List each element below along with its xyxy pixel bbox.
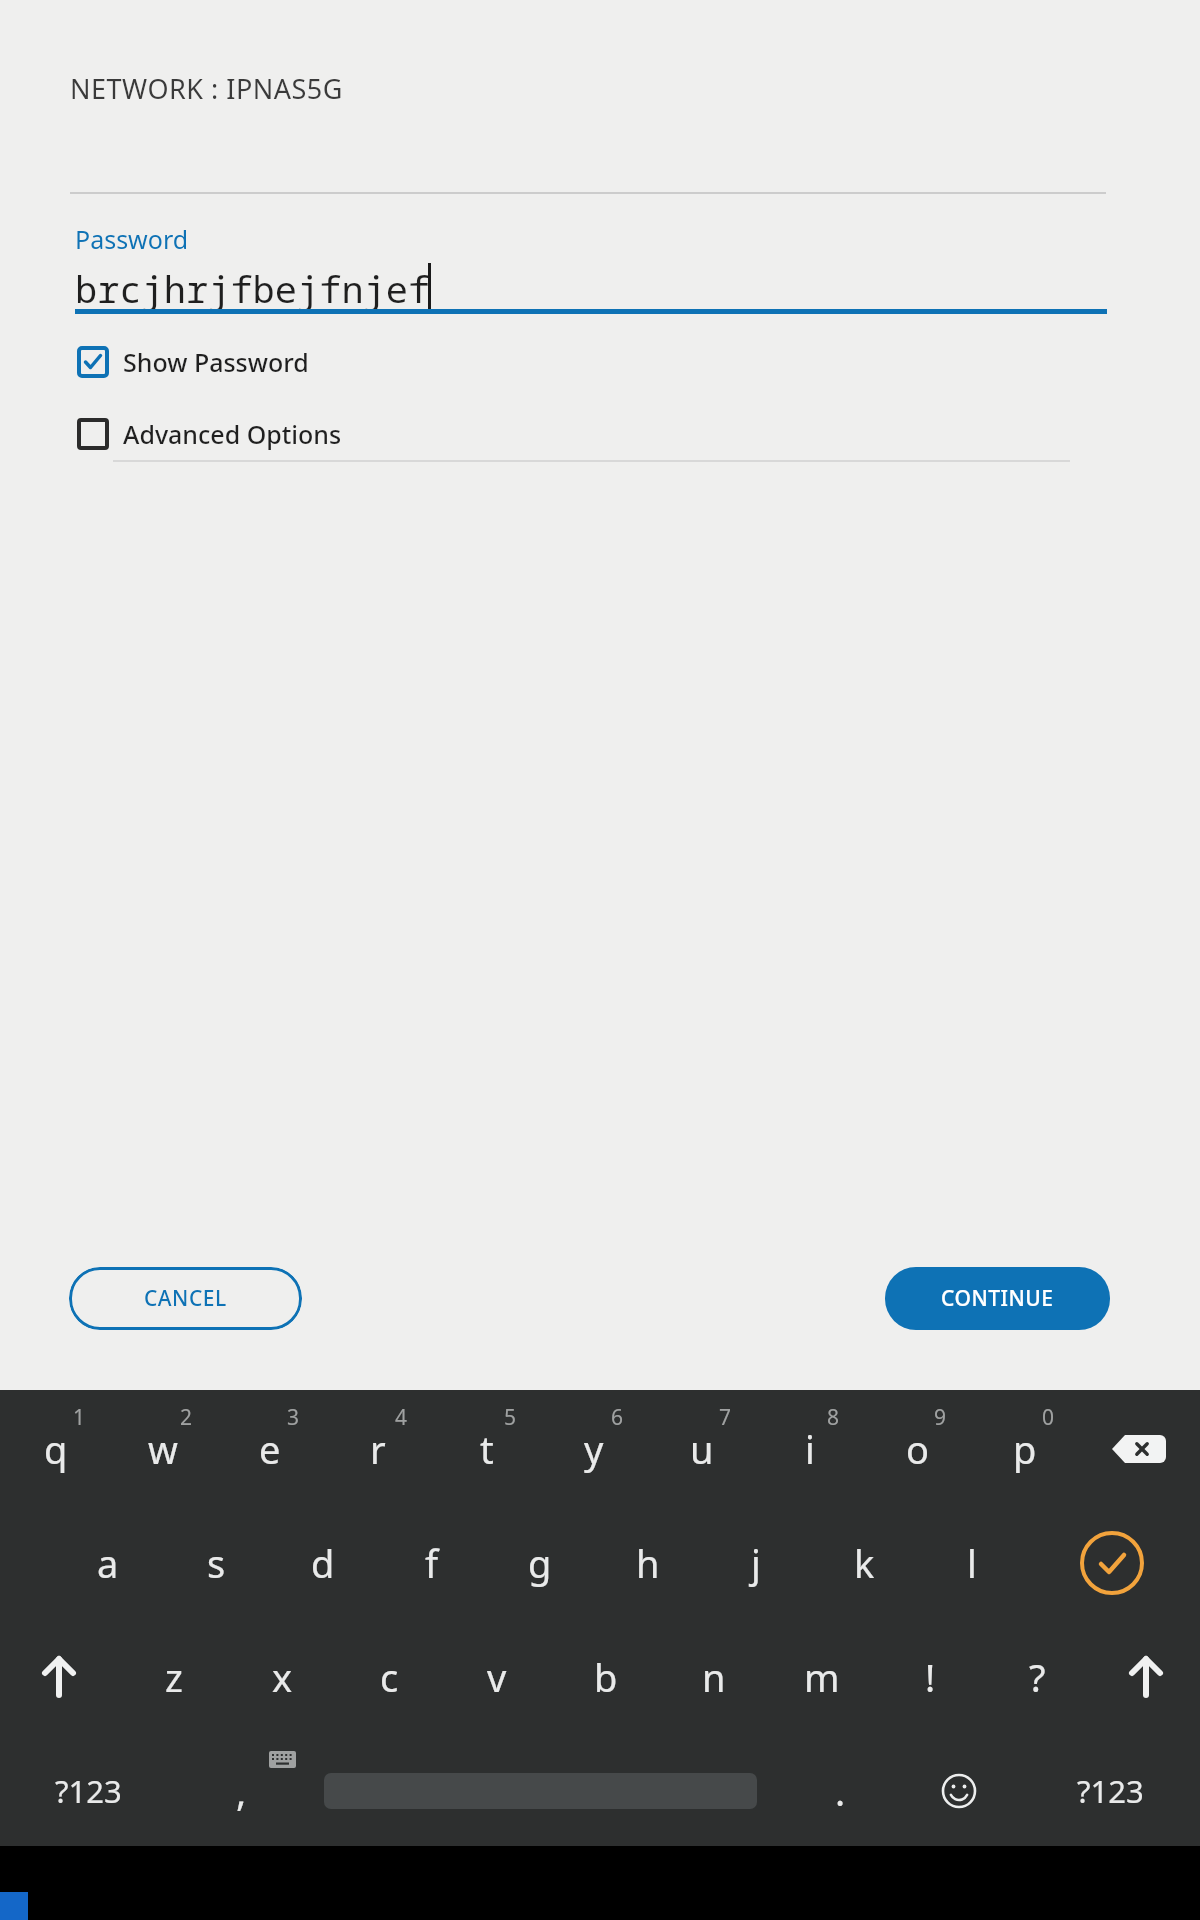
button[interactable]: e	[216, 1399, 324, 1499]
staticText: 9	[934, 1403, 947, 1431]
staticText: .	[835, 1765, 846, 1817]
staticText: c	[380, 1651, 399, 1703]
button[interactable]: CANCEL	[69, 1267, 302, 1330]
button[interactable]	[1062, 1513, 1162, 1613]
button[interactable]: a	[54, 1513, 162, 1613]
button[interactable]: g	[486, 1513, 594, 1613]
staticText: i	[805, 1423, 815, 1475]
button[interactable]: x	[228, 1627, 336, 1727]
button[interactable]: t	[433, 1399, 541, 1499]
button[interactable]: v	[443, 1627, 551, 1727]
staticText: r	[370, 1423, 386, 1475]
button[interactable]: Advanced Options	[77, 417, 342, 451]
staticText: k	[854, 1537, 875, 1589]
staticText: 7	[719, 1403, 732, 1431]
staticText: 2	[180, 1403, 193, 1431]
staticText: h	[636, 1537, 660, 1589]
button[interactable]: y	[540, 1399, 648, 1499]
staticText: !	[925, 1651, 936, 1703]
staticText: 4	[395, 1403, 408, 1431]
staticText: z	[165, 1651, 183, 1703]
staticText: b	[594, 1651, 618, 1703]
button[interactable]: d	[269, 1513, 377, 1613]
staticText: e	[259, 1423, 281, 1475]
staticText: u	[690, 1423, 714, 1475]
button[interactable]: u	[648, 1399, 756, 1499]
button[interactable]: c	[335, 1627, 443, 1727]
staticText: Show Password	[123, 345, 309, 379]
staticText: ?123	[1077, 1770, 1144, 1812]
staticText: 0	[1042, 1403, 1055, 1431]
button[interactable]: i	[756, 1399, 864, 1499]
button[interactable]: z	[120, 1627, 228, 1727]
button[interactable]: f	[378, 1513, 486, 1613]
staticText: o	[906, 1423, 929, 1475]
button[interactable]: s	[162, 1513, 270, 1613]
staticText: Password	[75, 222, 189, 256]
staticText: CANCEL	[144, 1284, 227, 1313]
staticText: ?	[1029, 1651, 1046, 1703]
staticText: Advanced Options	[123, 417, 342, 451]
button[interactable]	[909, 1741, 1009, 1841]
staticText: t	[480, 1423, 494, 1475]
button[interactable]: j	[702, 1513, 810, 1613]
staticText: v	[487, 1651, 507, 1703]
staticText: 6	[611, 1403, 624, 1431]
button[interactable]: .	[790, 1741, 890, 1841]
staticText: q	[44, 1423, 68, 1475]
staticText: ?123	[55, 1770, 122, 1812]
button[interactable]: CONTINUE	[885, 1267, 1110, 1330]
staticText: ,	[236, 1765, 247, 1817]
button[interactable]: ?123	[13, 1741, 163, 1841]
button[interactable]: o	[863, 1399, 971, 1499]
button[interactable]: !	[876, 1627, 984, 1727]
button[interactable]	[1096, 1627, 1196, 1727]
button[interactable]: n	[660, 1627, 768, 1727]
button[interactable]: r	[324, 1399, 432, 1499]
staticText: p	[1013, 1423, 1037, 1475]
staticText: j	[751, 1537, 761, 1589]
staticText: s	[207, 1537, 226, 1589]
button[interactable]: p	[971, 1399, 1079, 1499]
staticText: 3	[287, 1403, 300, 1431]
staticText: f	[425, 1537, 439, 1589]
button[interactable]: w	[109, 1399, 217, 1499]
staticText: m	[804, 1651, 840, 1703]
button[interactable]: b	[552, 1627, 660, 1727]
staticText: NETWORK : IPNAS5G	[70, 70, 343, 107]
staticText: n	[702, 1651, 726, 1703]
staticText: brcjhrjfbejfnjef	[75, 263, 431, 313]
button[interactable]: ?	[983, 1627, 1091, 1727]
button[interactable]: m	[768, 1627, 876, 1727]
staticText: w	[148, 1423, 178, 1475]
button[interactable]: ?123	[1035, 1741, 1185, 1841]
staticText: a	[97, 1537, 119, 1589]
button[interactable]: k	[810, 1513, 918, 1613]
staticText: 8	[827, 1403, 840, 1431]
button[interactable]: h	[594, 1513, 702, 1613]
button[interactable]	[1089, 1399, 1189, 1499]
staticText: 5	[504, 1403, 517, 1431]
button[interactable]: q	[2, 1399, 110, 1499]
staticText: y	[584, 1423, 604, 1475]
staticText: CONTINUE	[941, 1284, 1054, 1313]
button[interactable]: l	[918, 1513, 1026, 1613]
staticText: l	[967, 1537, 977, 1589]
staticText: 1	[73, 1403, 86, 1431]
staticText: d	[311, 1537, 335, 1589]
button[interactable]: Show Password	[77, 345, 309, 379]
button[interactable]: ,	[191, 1741, 291, 1841]
button[interactable]	[9, 1627, 109, 1727]
staticText: x	[272, 1651, 293, 1703]
staticText: g	[528, 1537, 552, 1589]
